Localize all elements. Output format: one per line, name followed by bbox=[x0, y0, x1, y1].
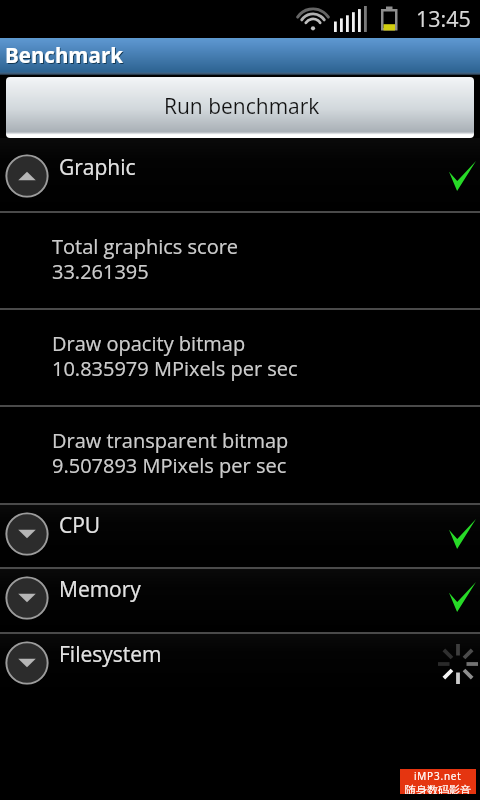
staticText: 随身数码影音 bbox=[405, 783, 471, 794]
staticText: iMP3.net bbox=[414, 769, 462, 783]
button[interactable]: Run benchmark bbox=[6, 77, 474, 138]
button[interactable]: Total graphics score bbox=[0, 213, 480, 308]
button[interactable]: CPU bbox=[0, 505, 480, 567]
staticText: Benchmark bbox=[5, 41, 123, 69]
staticText: Filesystem bbox=[59, 640, 162, 669]
button[interactable]: Graphic bbox=[0, 138, 480, 211]
button[interactable]: Memory bbox=[0, 569, 480, 632]
staticText: 10.835979 MPixels per sec bbox=[52, 355, 298, 382]
staticText: Run benchmark bbox=[164, 92, 320, 121]
other: Completed bbox=[449, 582, 476, 612]
staticText: Benchmark bbox=[6, 42, 124, 70]
button[interactable]: Draw transparent bitmap bbox=[0, 407, 480, 503]
button[interactable]: Draw opacity bitmap bbox=[0, 310, 480, 405]
staticText: Memory bbox=[59, 575, 141, 604]
other: Completed bbox=[449, 161, 476, 191]
staticText: 33.261395 bbox=[52, 258, 149, 285]
staticText: 9.507893 MPixels per sec bbox=[52, 452, 287, 479]
other: Running bbox=[441, 647, 475, 681]
staticText: CPU bbox=[59, 511, 101, 540]
button[interactable]: Filesystem bbox=[0, 634, 480, 694]
staticText: Graphic bbox=[59, 153, 136, 182]
staticText: 13:45 bbox=[416, 4, 471, 33]
staticText: Draw opacity bitmap bbox=[52, 330, 246, 357]
staticText: Total graphics score bbox=[52, 233, 239, 260]
staticText: Draw transparent bitmap bbox=[52, 427, 289, 454]
other: Completed bbox=[449, 519, 476, 549]
